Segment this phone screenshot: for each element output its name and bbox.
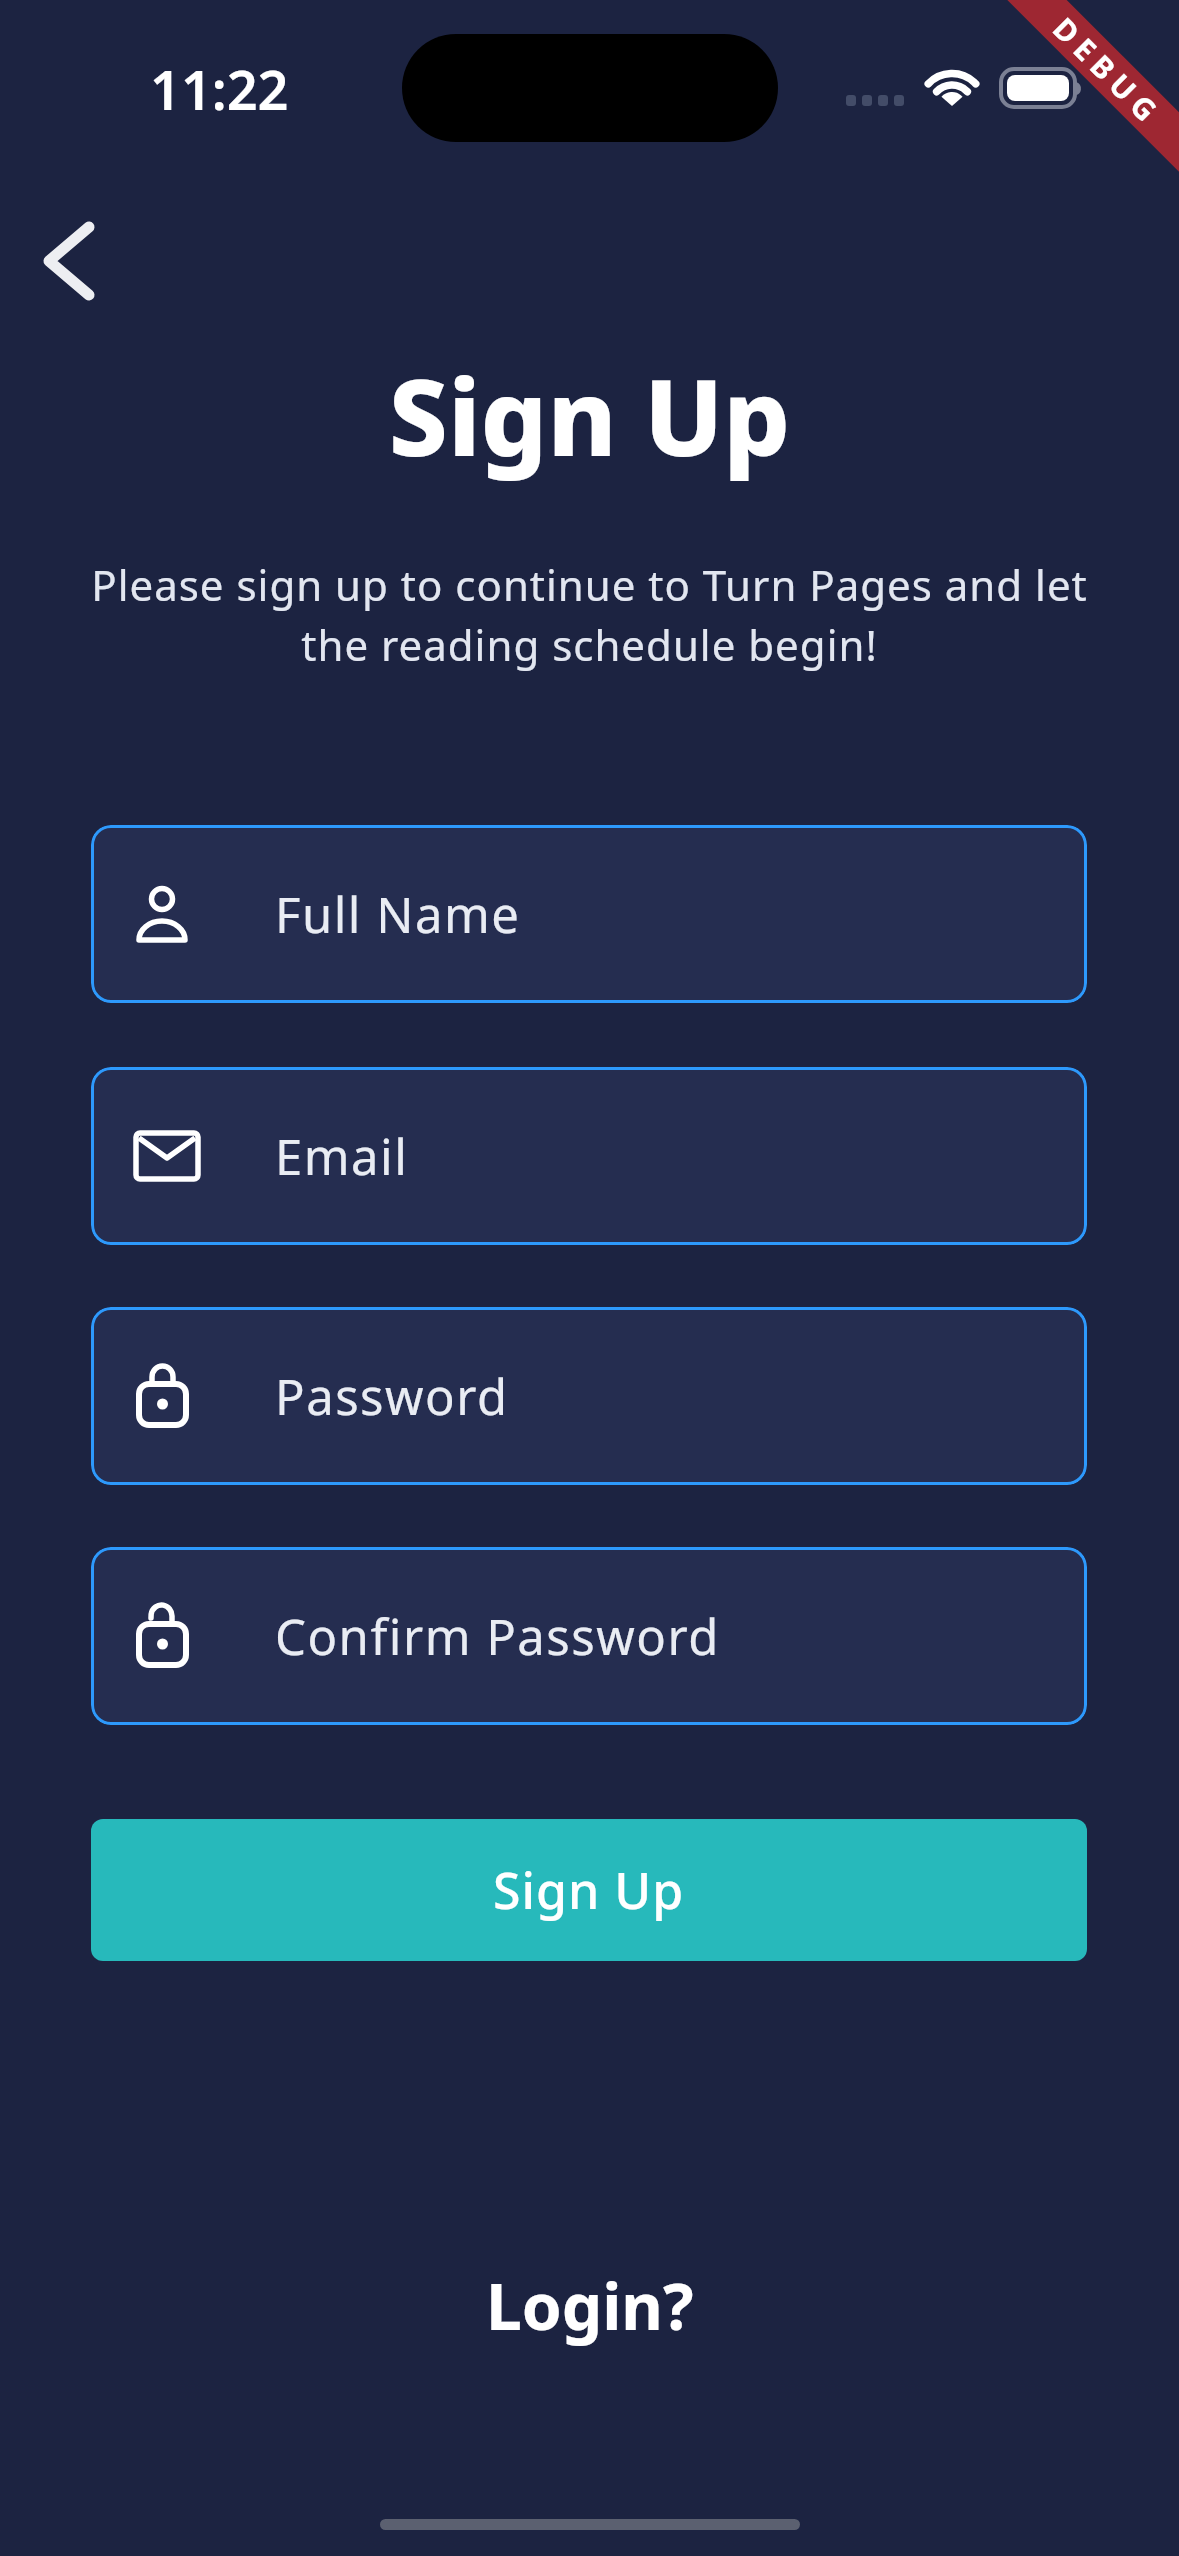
button[interactable] [28, 210, 128, 310]
button[interactable]: Email [91, 1067, 1087, 1245]
staticText: Confirm Password [275, 1603, 720, 1670]
button[interactable]: Login? [0, 2240, 1179, 2370]
staticText: Password [275, 1363, 509, 1430]
button[interactable]: Password [91, 1307, 1087, 1485]
staticText: Sign Up [0, 344, 1179, 487]
button[interactable]: Confirm Password [91, 1547, 1087, 1725]
button[interactable]: Full Name [91, 825, 1087, 1003]
staticText: Login? [486, 2262, 694, 2349]
staticText: Please sign up to continue to Turn Pages… [0, 556, 1179, 673]
staticText: Email [275, 1123, 409, 1190]
staticText: Full Name [275, 881, 521, 948]
staticText: Sign Up [493, 1856, 685, 1924]
staticText: DEBUG [1044, 8, 1172, 135]
button[interactable]: Sign Up [91, 1819, 1087, 1961]
staticText: 11:22 [150, 52, 289, 126]
